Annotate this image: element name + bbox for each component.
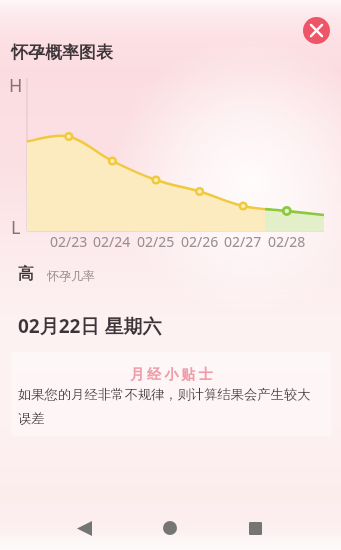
button[interactable]: 月经小贴士 — [11, 352, 331, 436]
staticText: 02月22日 星期六 — [18, 313, 162, 339]
staticText: 如果您的月经非常不规律，则计算结果会产生较大误差 — [18, 386, 315, 427]
staticText: 怀孕几率 — [47, 268, 95, 283]
button[interactable]: Home — [150, 508, 190, 548]
staticText: 怀孕概率图表 — [11, 42, 113, 63]
staticText: 02/26 — [181, 232, 219, 251]
staticText: 月经小贴士 — [13, 366, 331, 384]
staticText: 02/25 — [137, 232, 175, 251]
staticText: 02/27 — [224, 232, 262, 251]
staticText: 02/24 — [93, 232, 131, 251]
button[interactable]: Recent apps — [235, 508, 275, 548]
button[interactable]: Close — [303, 17, 330, 44]
staticText: 02/23 — [50, 232, 88, 251]
staticText: 02/28 — [268, 232, 306, 251]
button[interactable]: Back — [64, 508, 104, 548]
staticText: H — [9, 73, 23, 98]
staticText: L — [11, 215, 21, 240]
staticText: 高 — [18, 264, 34, 284]
